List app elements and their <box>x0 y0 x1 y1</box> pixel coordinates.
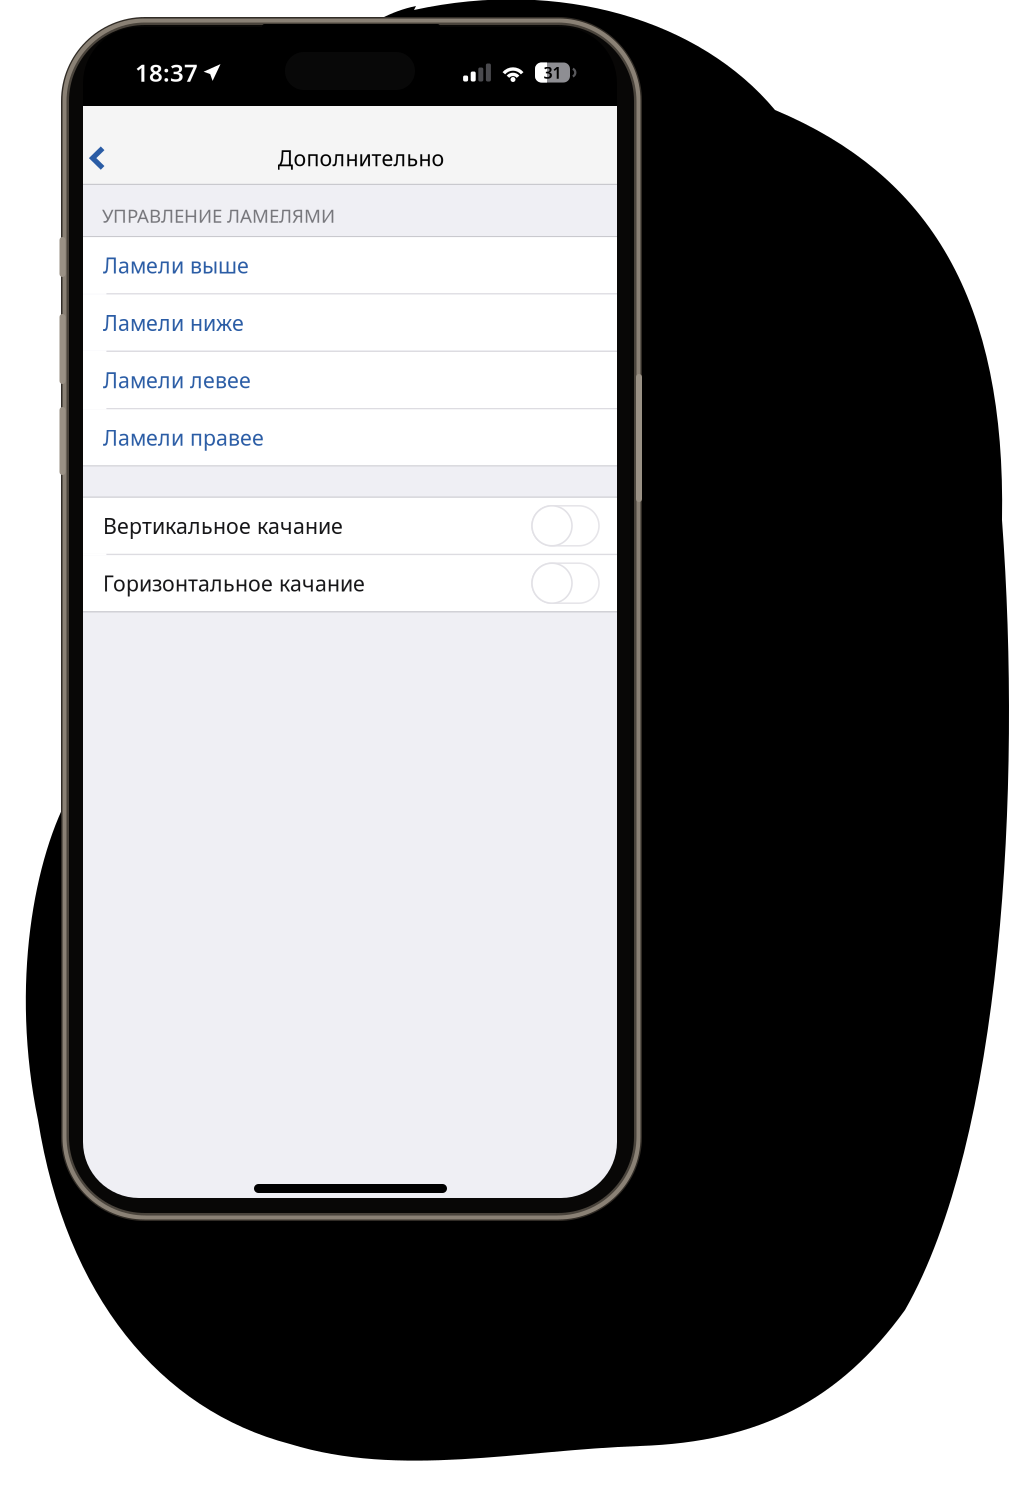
staticText: УПРАВЛЕНИЕ ЛАМЕЛЯМИ <box>102 203 335 228</box>
staticText: Вертикальное качание <box>103 512 343 540</box>
staticText: Ламели выше <box>103 251 249 279</box>
staticText: Ламели левее <box>103 366 251 394</box>
staticText: 31 <box>543 62 561 83</box>
button[interactable]: Ламели правее <box>83 409 617 465</box>
button[interactable]: Ламели левее <box>83 352 617 408</box>
staticText: Ламели ниже <box>103 308 244 337</box>
button[interactable]: Горизонтальное качание <box>83 555 617 611</box>
staticText: 18:37 <box>135 57 198 88</box>
staticText: Ламели правее <box>103 423 264 451</box>
staticText: Дополнительно <box>277 144 444 172</box>
button[interactable]: Back <box>83 131 141 185</box>
button[interactable]: Ламели ниже <box>83 295 617 351</box>
button[interactable]: Вертикальное качание <box>83 498 617 554</box>
staticText: Горизонтальное качание <box>103 569 365 597</box>
button[interactable]: Ламели выше <box>83 237 617 293</box>
